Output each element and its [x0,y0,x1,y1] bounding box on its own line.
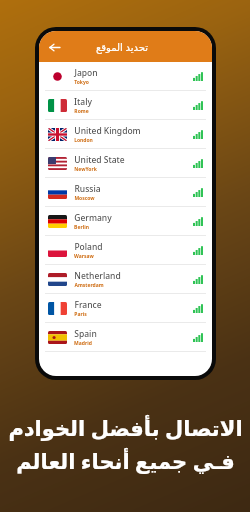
other: Signal strength [193,274,203,284]
button[interactable]: Germany [39,207,212,235]
other: Signal strength [193,71,203,81]
button[interactable]: France [39,294,212,322]
staticText: Netherland [74,270,121,282]
staticText: Warsaw [74,253,94,260]
button[interactable]: Italy [39,91,212,119]
staticText: London [74,137,93,144]
staticText: France [74,299,102,311]
staticText: Spain [74,328,97,340]
staticText: United State [74,154,125,166]
button[interactable]: Japon [39,62,212,90]
other: Signal strength [193,303,203,313]
button[interactable]: Netherland [39,265,212,293]
other: Signal strength [193,129,203,139]
other: Signal strength [193,332,203,342]
staticText: Italy [74,96,92,108]
button[interactable]: United State [39,149,212,177]
staticText: الاتصال بأفضل الخوادم [8,414,243,443]
other: Signal strength [193,158,203,168]
button[interactable]: Russia [39,178,212,206]
staticText: Moscow [74,195,95,202]
other: Signal strength [193,245,203,255]
other: Signal strength [193,187,203,197]
staticText: NewYork [74,166,97,173]
other: Signal strength [193,216,203,226]
staticText: Russia [74,183,101,195]
staticText: Berlin [74,224,89,231]
staticText: Tokyo [74,79,89,86]
staticText: تحديد الموقع [96,40,148,54]
staticText: Poland [74,241,103,253]
staticText: Japon [74,67,98,79]
button[interactable]: Spain [39,323,212,351]
staticText: Madrid [74,340,92,347]
button[interactable]: Back [44,37,64,57]
button[interactable]: United Kingdom [39,120,212,148]
staticText: Amsterdam [74,282,104,289]
other: Signal strength [193,100,203,110]
staticText: Paris [74,311,87,318]
button[interactable]: Poland [39,236,212,264]
staticText: فـي جميع أنحاء العالم [16,447,235,476]
staticText: Rome [74,108,89,115]
staticText: Germany [74,212,112,224]
staticText: United Kingdom [74,125,141,137]
